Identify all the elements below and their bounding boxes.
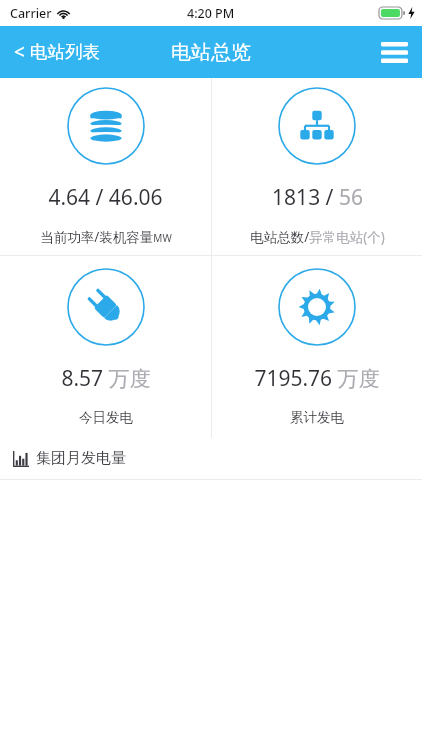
button[interactable]: Current power xyxy=(0,78,211,255)
button[interactable]: < xyxy=(0,26,114,78)
staticText: 电站总数/异常电站(个) xyxy=(250,228,385,246)
staticText: < xyxy=(14,39,25,65)
staticText: 4:20 PM xyxy=(187,5,235,22)
staticText: 电站总览 xyxy=(171,40,251,65)
button[interactable]: 集团月发电量 xyxy=(0,438,422,479)
staticText: 4.64 / 46.06 xyxy=(48,183,163,212)
button[interactable]: Station count xyxy=(212,78,422,255)
staticText: 1813 / 56 xyxy=(272,183,363,212)
button[interactable]: Today generation xyxy=(0,256,211,438)
button[interactable]: Menu xyxy=(367,26,422,78)
staticText: 累计发电 xyxy=(290,409,344,426)
button[interactable]: Total generation xyxy=(212,256,422,438)
staticText: 今日发电 xyxy=(79,409,133,426)
staticText: 当前功率/装机容量MW xyxy=(40,228,172,246)
staticText: 集团月发电量 xyxy=(36,449,126,468)
staticText: 8.57 万度 xyxy=(61,364,151,393)
staticText: 电站列表 xyxy=(30,41,100,63)
staticText: 7195.76 万度 xyxy=(254,364,380,393)
staticText: Carrier xyxy=(10,5,52,22)
